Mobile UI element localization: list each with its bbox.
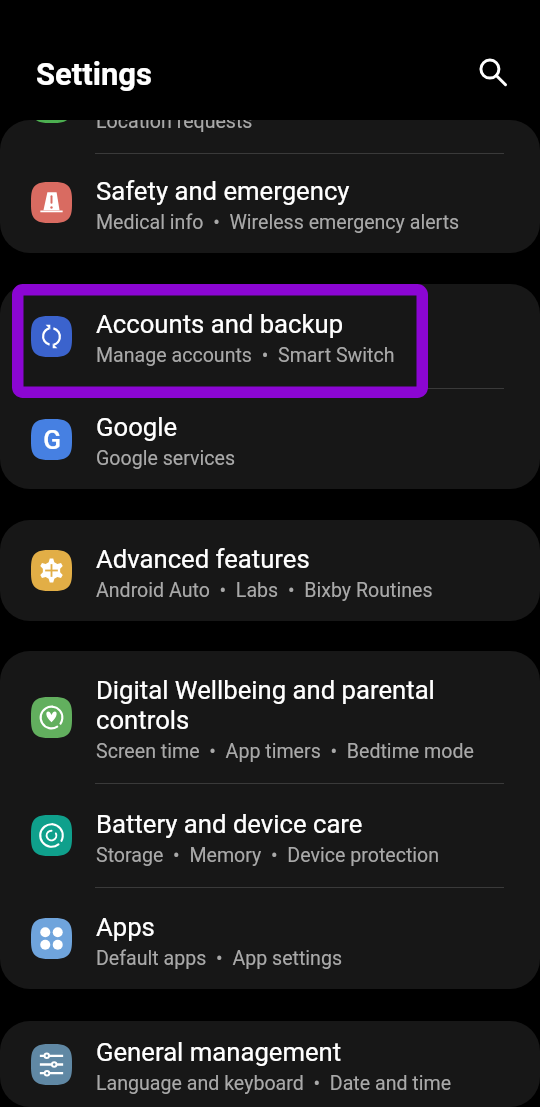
staticText: Battery and device care <box>96 809 363 839</box>
staticText: Language and keyboard • Date and time <box>96 1072 452 1095</box>
staticText: Medical info • Wireless emergency alerts <box>96 211 460 234</box>
staticText: Google <box>96 412 178 442</box>
staticText: Accounts and backup <box>96 309 344 339</box>
button[interactable]: Advanced features <box>0 520 540 621</box>
button[interactable]: Digital Wellbeing and parental controls <box>0 651 540 783</box>
staticText: Safety and emergency <box>96 176 350 206</box>
staticText: Google services <box>96 447 236 470</box>
staticText: Digital Wellbeing and parental controls <box>96 675 516 735</box>
staticText: Storage • Memory • Device protection <box>96 844 440 867</box>
button[interactable]: G <box>0 389 540 489</box>
button[interactable]: Apps <box>0 888 540 989</box>
staticText: Default apps • App settings <box>96 947 343 970</box>
button[interactable]: Location <box>0 120 540 153</box>
staticText: Location requests <box>96 120 253 133</box>
staticText: Manage accounts • Smart Switch <box>96 344 395 367</box>
staticText: Settings <box>36 56 153 92</box>
button[interactable]: General management <box>0 1021 540 1107</box>
staticText: G <box>43 425 61 455</box>
button[interactable]: Battery and device care <box>0 784 540 887</box>
staticText: General management <box>96 1037 342 1067</box>
staticText: Screen time • App timers • Bedtime mode <box>96 740 474 763</box>
staticText: Advanced features <box>96 544 310 574</box>
button[interactable]: Safety and emergency <box>0 152 540 253</box>
button[interactable]: Search <box>468 48 516 96</box>
staticText: Apps <box>96 912 155 942</box>
button[interactable]: Accounts and backup <box>0 284 540 388</box>
staticText: Android Auto • Labs • Bixby Routines <box>96 579 433 602</box>
